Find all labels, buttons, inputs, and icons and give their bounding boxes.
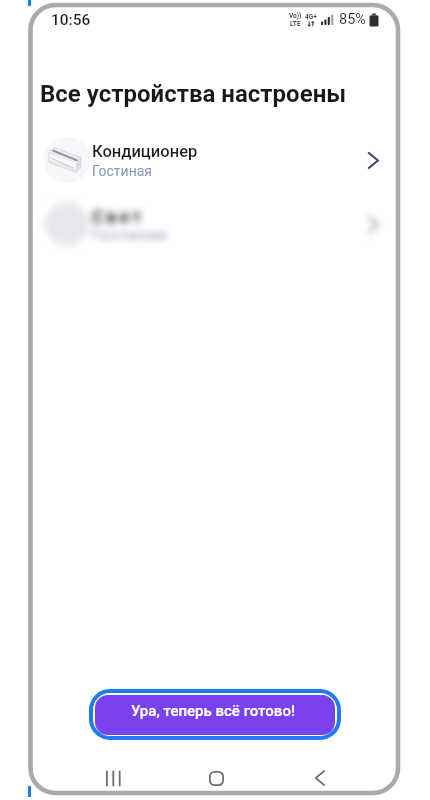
staticText: 10:56 [51, 11, 91, 29]
button[interactable] [202, 766, 230, 790]
button[interactable]: Свет [33, 195, 397, 253]
staticText: Все устройства настроены [40, 80, 347, 108]
staticText: LTE [290, 20, 301, 28]
button[interactable] [306, 766, 334, 790]
button[interactable] [99, 766, 127, 790]
staticText: 4G+ [305, 13, 317, 21]
staticText: Свет [92, 206, 144, 227]
staticText: Гостиная [92, 163, 152, 179]
staticText: Vo)) [289, 12, 302, 20]
staticText: Гостиная [92, 227, 168, 243]
button[interactable]: Ура, теперь всё готово! [89, 689, 341, 740]
staticText: Ура, теперь всё готово! [131, 702, 295, 720]
staticText: Кондиционер [92, 142, 198, 161]
button[interactable]: Кондиционер [33, 131, 397, 189]
staticText: 85% [339, 11, 366, 28]
